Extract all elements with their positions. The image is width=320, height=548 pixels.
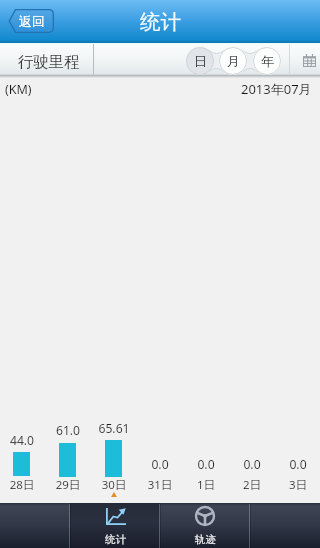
button[interactable]: Calendar bbox=[297, 46, 320, 74]
button[interactable]: 统计 bbox=[70, 503, 160, 548]
button[interactable]: 3日 bbox=[275, 477, 320, 493]
staticText: 日 bbox=[194, 53, 207, 69]
staticText: 2013年07月 bbox=[241, 80, 312, 98]
button[interactable]: 28日 bbox=[0, 477, 45, 493]
staticText: 月 bbox=[227, 53, 240, 69]
staticText: 0.0 bbox=[229, 456, 275, 473]
staticText: 统计 bbox=[140, 9, 181, 35]
staticText: 1日 bbox=[183, 477, 229, 493]
staticText: 2日 bbox=[229, 477, 275, 493]
button[interactable]: 年 bbox=[253, 47, 281, 75]
staticText: 行驶里程 bbox=[18, 52, 80, 71]
button[interactable] bbox=[250, 503, 320, 548]
staticText: 65.61 bbox=[91, 420, 137, 437]
staticText: 返回 bbox=[19, 13, 45, 29]
button[interactable] bbox=[0, 503, 69, 548]
staticText: 29日 bbox=[45, 477, 91, 493]
staticText: 44.0 bbox=[0, 432, 45, 449]
button[interactable]: 月 bbox=[219, 47, 247, 75]
staticText: 0.0 bbox=[183, 456, 229, 473]
button[interactable]: 返回 bbox=[8, 9, 54, 33]
staticText: 31日 bbox=[137, 477, 183, 493]
staticText: (KM) bbox=[5, 81, 32, 98]
staticText: 3日 bbox=[275, 477, 320, 493]
staticText: 统计 bbox=[105, 533, 126, 546]
staticText: 年 bbox=[261, 53, 274, 69]
button[interactable]: 日 bbox=[186, 47, 214, 75]
staticText: 28日 bbox=[0, 477, 45, 493]
staticText: 轨迹 bbox=[195, 533, 216, 546]
button[interactable]: 轨迹 bbox=[160, 503, 250, 548]
button[interactable]: 30日 bbox=[91, 477, 137, 493]
staticText: 0.0 bbox=[275, 456, 320, 473]
staticText: 61.0 bbox=[45, 422, 91, 439]
staticText: 0.0 bbox=[137, 456, 183, 473]
button[interactable]: 29日 bbox=[45, 477, 91, 493]
button[interactable]: 2日 bbox=[229, 477, 275, 493]
button[interactable]: 31日 bbox=[137, 477, 183, 493]
button[interactable]: 1日 bbox=[183, 477, 229, 493]
staticText: 30日 bbox=[91, 477, 137, 493]
